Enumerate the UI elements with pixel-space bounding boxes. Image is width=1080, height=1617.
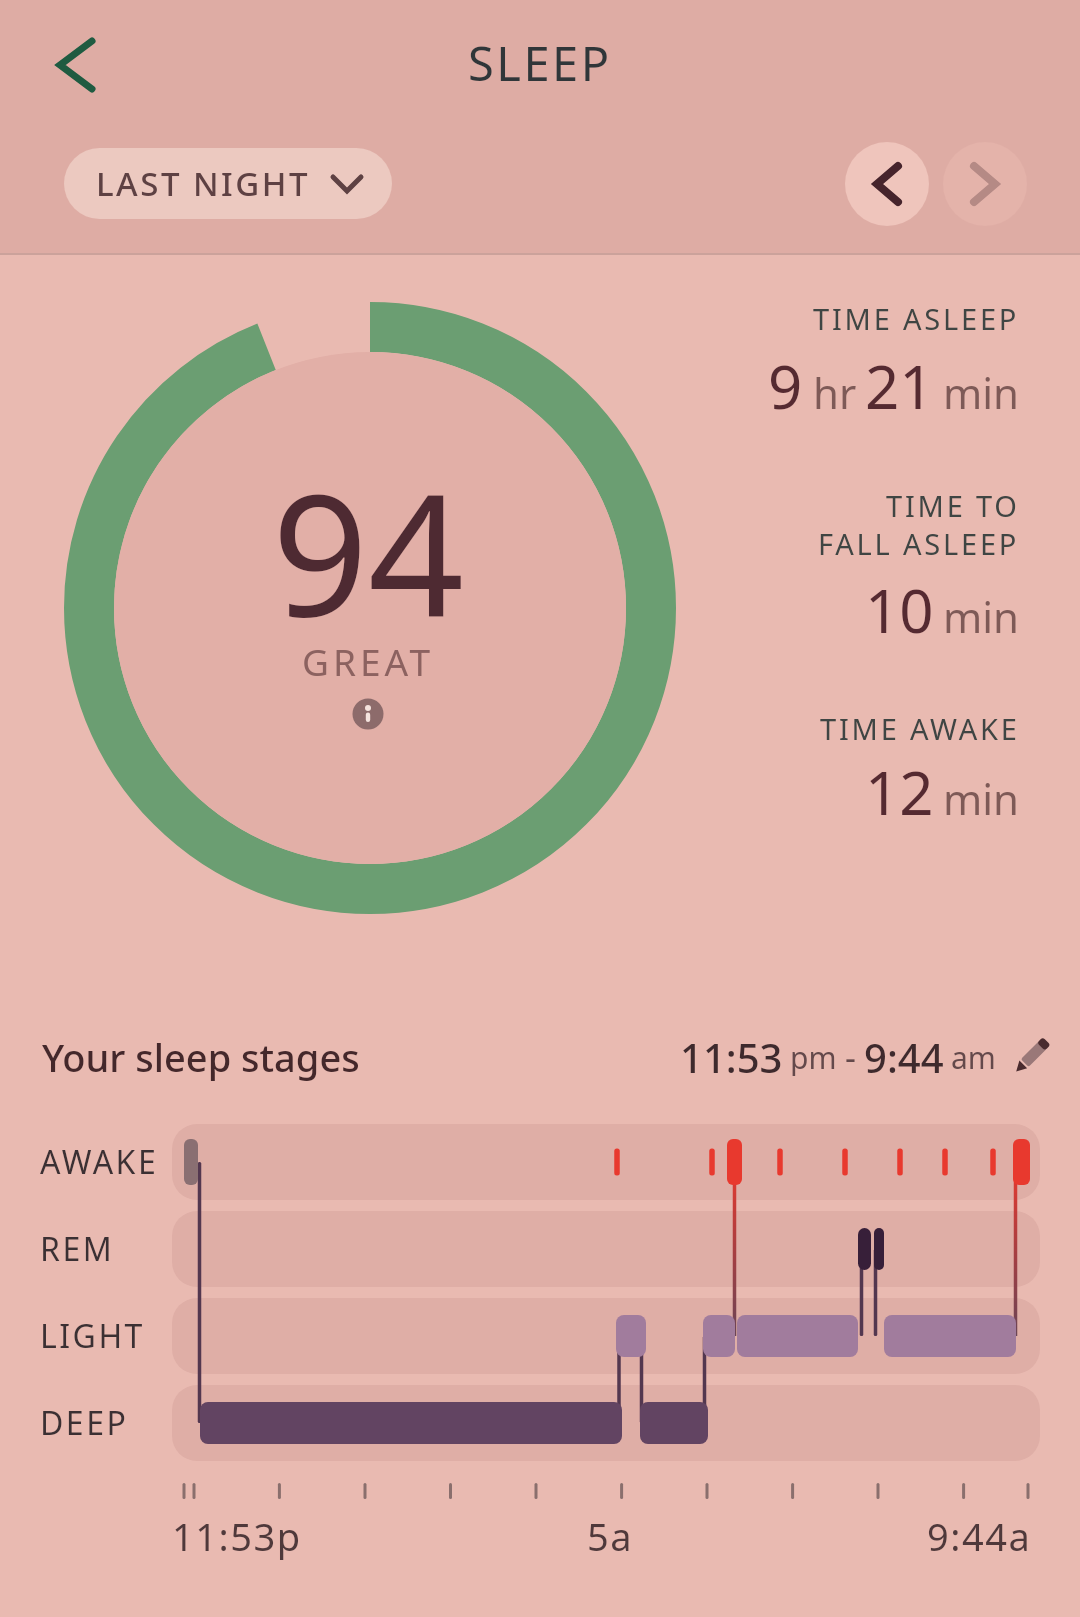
staticText: SLEEP: [468, 31, 612, 95]
staticText: DEEP: [40, 1401, 129, 1445]
staticText: 94: [272, 436, 465, 656]
staticText: 5a: [587, 1510, 634, 1562]
staticText: -: [845, 1034, 856, 1080]
button[interactable]: LAST NIGHT: [64, 148, 392, 219]
staticText: TIME ASLEEP: [813, 299, 1020, 338]
staticText: 11:53: [680, 1030, 783, 1084]
staticText: 21: [865, 345, 934, 427]
staticText: min: [943, 770, 1020, 827]
staticText: 10: [865, 569, 934, 651]
staticText: 9:44a: [927, 1510, 1032, 1562]
staticText: min: [943, 364, 1020, 421]
button[interactable]: [340, 686, 396, 742]
staticText: AWAKE: [40, 1140, 159, 1184]
staticText: min: [943, 588, 1020, 645]
staticText: GREAT: [302, 636, 435, 686]
staticText: Your sleep stages: [42, 1031, 360, 1083]
staticText: TIME TO: [886, 486, 1020, 525]
staticText: REM: [40, 1227, 115, 1271]
button[interactable]: 11:53: [620, 1027, 1050, 1087]
button[interactable]: [845, 142, 929, 226]
staticText: am: [951, 1037, 996, 1078]
staticText: TIME AWAKE: [820, 709, 1020, 748]
button[interactable]: [40, 30, 110, 100]
staticText: 11:53p: [172, 1510, 302, 1562]
staticText: LAST NIGHT: [96, 161, 311, 206]
staticText: LIGHT: [40, 1314, 145, 1358]
staticText: 9: [768, 345, 803, 427]
staticText: pm: [790, 1037, 837, 1078]
staticText: 12: [865, 751, 934, 833]
staticText: FALL ASLEEP: [818, 524, 1020, 563]
button[interactable]: [943, 142, 1027, 226]
staticText: hr: [813, 364, 857, 421]
staticText: 9:44: [864, 1030, 944, 1084]
